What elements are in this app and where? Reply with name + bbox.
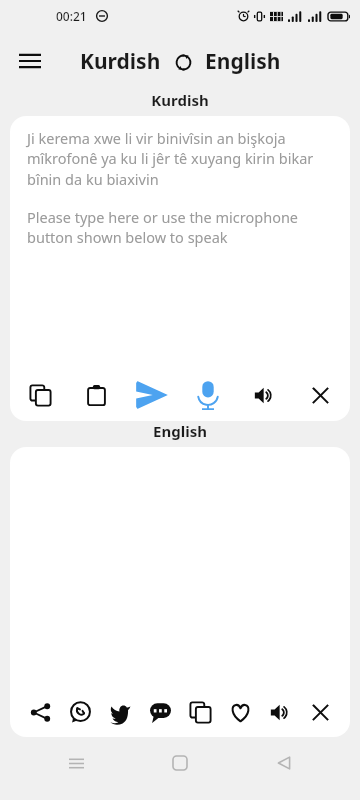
button[interactable]: English: [205, 47, 281, 76]
button[interactable]: Clear: [300, 692, 340, 732]
staticText: Please type here or use the microphone b…: [27, 207, 336, 248]
staticText: English: [205, 47, 281, 76]
button[interactable]: Clear: [300, 375, 340, 415]
button[interactable]: Menu: [8, 39, 52, 83]
button[interactable]: Speak: [188, 375, 228, 415]
staticText: 00:21: [56, 8, 87, 24]
staticText: English: [153, 421, 207, 441]
button[interactable]: Swap languages: [170, 49, 196, 75]
button[interactable]: Favourite: [220, 692, 260, 732]
button[interactable]: Recents: [48, 743, 104, 783]
button[interactable]: Share: [20, 692, 60, 732]
button[interactable]: Back: [256, 743, 312, 783]
button[interactable]: Copy: [180, 692, 220, 732]
button[interactable]: SMS: [140, 692, 180, 732]
button[interactable]: Ji kerema xwe li vir binivîsin an bişkoj…: [10, 116, 350, 369]
button[interactable]: Listen: [244, 375, 284, 415]
button[interactable]: Listen: [260, 692, 300, 732]
button[interactable]: Copy: [20, 375, 60, 415]
button[interactable]: Kurdish: [80, 47, 161, 76]
button[interactable]: Paste: [76, 375, 116, 415]
staticText: Kurdish: [151, 90, 209, 110]
button[interactable]: Translate: [132, 375, 172, 415]
staticText: Kurdish: [80, 47, 161, 76]
button[interactable]: WhatsApp: [60, 692, 100, 732]
button[interactable]: Home: [152, 743, 208, 783]
button[interactable]: Twitter: [100, 692, 140, 732]
staticText: Ji kerema xwe li vir binivîsin an bişkoj…: [27, 128, 336, 190]
